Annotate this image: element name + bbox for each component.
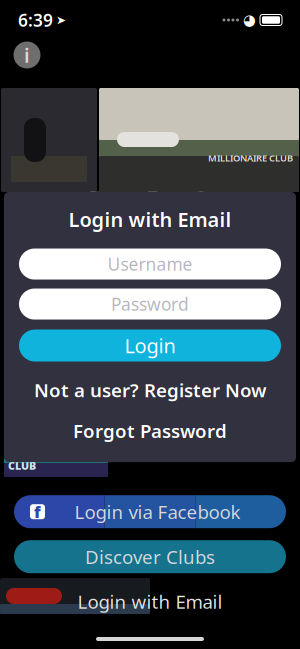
button[interactable]: f [14,495,286,528]
staticText: Discover Clubs [85,544,215,569]
button[interactable]: Discover Clubs [14,540,286,573]
staticText: Password [111,293,189,316]
staticText: Login with Email [77,589,222,614]
staticText: 6:39 [18,8,53,31]
button[interactable]: Username [19,249,281,280]
staticText: CLUB [8,458,36,473]
button[interactable]: Login with Email [57,582,242,621]
staticText: clubfu [53,173,246,255]
staticText: Login via Facebook [74,499,240,524]
staticText: i [24,42,30,68]
staticText: ➤ [56,13,66,27]
button[interactable]: Login [19,330,281,362]
staticText: Forgot Password [73,418,227,443]
button[interactable]: Forgot Password [63,413,237,448]
staticText: Not a user? Register Now [34,378,266,402]
staticText: f [34,501,41,522]
staticText: ◕ [243,12,256,28]
button[interactable]: Not a user? Register Now [24,373,276,407]
staticText: Username [107,253,192,276]
staticText: MILLIONAIRE CLUB [208,152,293,164]
button[interactable]: Information [10,38,44,72]
button[interactable]: Password [19,289,281,320]
staticText: Login with Email [68,206,231,233]
staticText: Login [124,332,175,359]
